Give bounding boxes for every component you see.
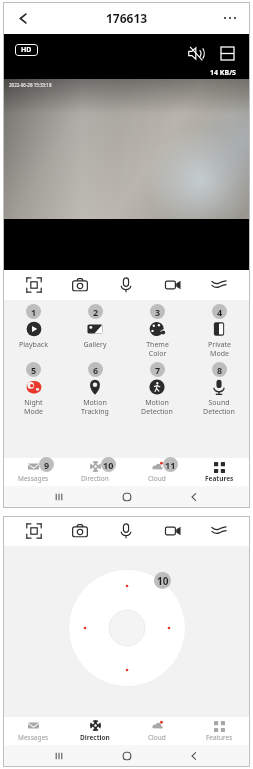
staticText: 2 [93,306,99,318]
button[interactable]: Back [183,486,205,508]
button[interactable]: Cloud [126,458,188,486]
staticText: 4 [217,306,223,318]
button[interactable]: Direction [64,717,126,745]
button[interactable]: 2 [64,302,126,352]
button[interactable]: 3 [126,302,188,360]
staticText: Night Mode [24,398,43,416]
staticText: 5 [31,364,37,376]
button[interactable]: 4 [188,302,250,360]
staticText: 10 [157,574,169,588]
button[interactable]: Direction pad [67,568,187,688]
button[interactable]: Cloud [126,717,188,745]
button[interactable]: 5 [3,360,64,418]
button[interactable]: Collapse [204,270,234,300]
button[interactable]: More options [218,6,242,30]
button[interactable]: Back [11,6,35,30]
button[interactable]: Record [158,270,188,300]
staticText: 9 [44,459,50,471]
button[interactable]: 6 [64,360,126,418]
staticText: Private Mode [208,340,231,358]
button[interactable]: Snapshot [65,516,95,546]
staticText: Features [205,474,234,483]
staticText: 10 [103,459,114,471]
staticText: 11 [165,459,176,471]
button[interactable]: Recents [48,486,70,508]
staticText: 176613 [106,10,148,26]
button[interactable]: Talk [111,270,141,300]
button[interactable]: Back [183,745,205,767]
staticText: Direction [80,733,110,742]
button[interactable]: 7 [126,360,188,418]
button[interactable]: Fullscreen [19,270,49,300]
staticText: Cloud [148,474,166,483]
staticText: 7 [155,364,161,376]
button[interactable]: Talk [111,516,141,546]
staticText: Features [206,733,233,742]
button[interactable]: Snapshot [65,270,95,300]
staticText: 14 KB/S [210,68,236,78]
button[interactable]: Features [188,458,250,486]
staticText: HD [21,45,32,55]
button[interactable]: Collapse [204,516,234,546]
button[interactable]: HD [21,45,32,55]
staticText: Sound Detection [203,398,235,416]
staticText: Messages [18,733,49,742]
button[interactable]: Messages [3,458,64,486]
staticText: Playback [19,340,48,350]
staticText: 2022-06-28 15:33:18 [9,82,52,88]
staticText: Motion Tracking [81,398,109,416]
button[interactable]: Fullscreen [19,516,49,546]
button[interactable]: 1 [3,302,64,352]
staticText: 1 [31,306,37,318]
button[interactable]: Home [116,486,138,508]
staticText: Direction [81,474,109,483]
button[interactable]: Split screen [216,42,238,64]
button[interactable]: Direction [64,458,126,486]
button[interactable]: Recents [48,745,70,767]
button[interactable]: Messages [3,717,64,745]
staticText: 6 [93,364,99,376]
button[interactable]: 8 [188,360,250,418]
staticText: 3 [155,306,161,318]
button[interactable]: Features [188,717,250,745]
staticText: Gallery [83,340,107,350]
button[interactable]: Record [158,516,188,546]
staticText: Cloud [148,733,166,742]
staticText: Theme Color [146,340,169,358]
staticText: Motion Detection [141,398,173,416]
staticText: 8 [217,364,223,376]
staticText: Messages [18,474,49,483]
button[interactable]: Mute [184,42,206,64]
button[interactable]: Home [116,745,138,767]
